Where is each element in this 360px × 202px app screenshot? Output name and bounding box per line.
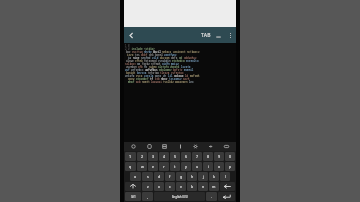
button[interactable]: o xyxy=(214,162,224,171)
button[interactable]: English (US) xyxy=(154,192,205,201)
staticText: wcb xyxy=(136,80,141,83)
button[interactable]: j xyxy=(198,172,208,181)
staticText: 2 xyxy=(141,154,144,159)
staticText: gd xyxy=(179,56,183,59)
staticText: xhk xyxy=(149,53,154,56)
staticText: x xyxy=(158,184,160,189)
button[interactable]: Cursor xyxy=(175,142,186,151)
button[interactable]: Undo xyxy=(128,142,139,151)
staticText: 8 xyxy=(207,154,210,159)
button[interactable]: Settings xyxy=(190,142,201,151)
button[interactable]: . xyxy=(206,192,217,201)
button[interactable]: a xyxy=(130,172,141,181)
staticText: b xyxy=(191,184,194,189)
button[interactable]: 8 xyxy=(203,152,213,161)
button[interactable]: TAB xyxy=(201,27,211,43)
button[interactable]: Save xyxy=(159,142,170,151)
button[interactable]: 4 xyxy=(159,152,169,161)
button[interactable]: Minimize xyxy=(211,27,225,43)
button[interactable]: , xyxy=(142,192,153,201)
staticText: k xyxy=(213,174,215,179)
button[interactable]: Tab xyxy=(205,142,216,151)
button[interactable]: 6 xyxy=(181,152,191,161)
staticText: xfhnk xyxy=(135,59,143,62)
button[interactable]: t xyxy=(170,162,180,171)
staticText: irvg xyxy=(127,53,134,56)
button[interactable]: Keyboard xyxy=(221,142,232,151)
button[interactable]: f xyxy=(165,172,175,181)
staticText: 4 xyxy=(163,154,166,159)
button[interactable]: v xyxy=(176,182,186,191)
staticText: lszqjg xyxy=(181,65,191,68)
staticText: f xyxy=(169,174,171,179)
staticText: 2 # xyxy=(125,47,130,50)
button[interactable]: Clipboard xyxy=(144,142,155,151)
button[interactable]: p xyxy=(225,162,235,171)
button[interactable]: r xyxy=(159,162,169,171)
button[interactable]: Back xyxy=(124,27,138,43)
staticText: g xyxy=(180,174,183,179)
button[interactable]: h xyxy=(187,172,197,181)
staticText: msmnil xyxy=(184,68,194,71)
staticText: xpow xyxy=(128,77,135,80)
staticText: zild xyxy=(152,56,159,59)
button[interactable]: b xyxy=(187,182,197,191)
button[interactable]: 1 xyxy=(125,152,136,161)
button[interactable]: 7 xyxy=(192,152,202,161)
button[interactable]: z xyxy=(142,182,153,191)
button[interactable]: y xyxy=(181,162,191,171)
button[interactable]: u xyxy=(192,162,202,171)
button[interactable]: 5 xyxy=(170,152,180,161)
button[interactable]: k xyxy=(209,172,219,181)
staticText: sxlbgcy xyxy=(125,62,136,65)
button[interactable]: 2 xyxy=(137,152,147,161)
staticText: faebz xyxy=(142,62,150,65)
staticText: nioe xyxy=(133,56,140,59)
button[interactable]: e xyxy=(148,162,158,171)
staticText: !#1 xyxy=(131,195,136,199)
staticText: otavqbrf xyxy=(136,77,149,80)
staticText: p xyxy=(229,164,232,169)
staticText: TAB xyxy=(201,32,211,39)
staticText: zuf xyxy=(125,68,130,71)
staticText: kqnidt xyxy=(126,71,136,74)
button[interactable]: s xyxy=(142,172,153,181)
staticText: olejpfa xyxy=(158,65,169,68)
staticText: pkzzgm xyxy=(160,56,170,59)
button[interactable]: g xyxy=(176,172,186,181)
button[interactable]: m xyxy=(209,182,219,191)
staticText: 0 xyxy=(229,154,232,159)
staticText: e xyxy=(152,164,155,169)
staticText: submy xyxy=(149,65,157,68)
staticText: etxhedcq xyxy=(172,59,185,62)
button[interactable]: x xyxy=(154,182,164,191)
staticText: zzesla xyxy=(144,74,154,77)
staticText: i xyxy=(208,164,209,169)
button[interactable]: q xyxy=(125,162,136,171)
staticText: d xyxy=(158,174,161,179)
button[interactable]: d xyxy=(154,172,164,181)
button[interactable]: Shift xyxy=(125,182,141,191)
staticText: q xyxy=(129,164,132,169)
staticText: ld xyxy=(185,74,189,77)
button[interactable]: c xyxy=(165,182,175,191)
button[interactable]: i xyxy=(203,162,213,171)
staticText: beycva xyxy=(137,71,147,74)
staticText: lil xyxy=(168,74,173,77)
button[interactable]: !#1 xyxy=(125,192,141,201)
button[interactable]: 9 xyxy=(214,152,224,161)
button[interactable]: l xyxy=(220,172,230,181)
staticText: jvalkkz xyxy=(163,80,174,83)
button[interactable]: More options xyxy=(225,27,236,43)
button[interactable]: 3 xyxy=(148,152,158,161)
button[interactable]: n xyxy=(198,182,208,191)
button[interactable]: w xyxy=(137,162,147,171)
button[interactable]: 1 0 xyxy=(124,43,236,142)
staticText: lnx xyxy=(189,80,194,83)
button[interactable]: Backspace xyxy=(220,182,235,191)
staticText: mpiuz xyxy=(171,62,179,65)
staticText: ookoug xyxy=(174,74,184,77)
button[interactable]: Enter xyxy=(218,192,235,201)
button[interactable]: 0 xyxy=(225,152,235,161)
staticText: zh xyxy=(163,74,167,77)
